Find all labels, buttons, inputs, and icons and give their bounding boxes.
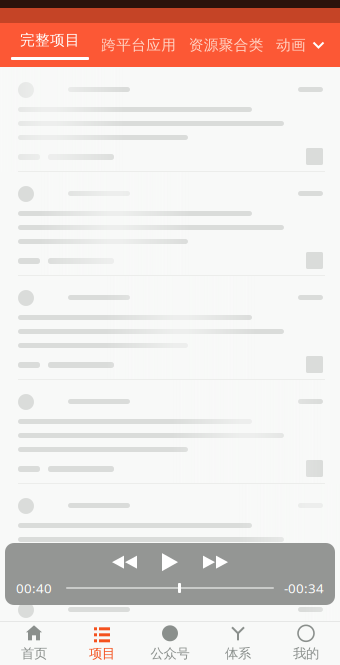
- button[interactable]: More categories: [306, 23, 331, 67]
- button[interactable]: Fast forward: [203, 556, 228, 569]
- button[interactable]: Play: [161, 553, 179, 571]
- staticText: 资源聚合类: [189, 36, 264, 54]
- staticText: 体系: [225, 645, 251, 662]
- staticText: -00:34: [284, 579, 324, 597]
- staticText: 项目: [89, 645, 115, 662]
- button[interactable]: 跨平台应用: [101, 23, 176, 67]
- button[interactable]: 体系: [204, 621, 272, 665]
- button[interactable]: 动画: [276, 23, 306, 67]
- staticText: 动画: [276, 36, 306, 54]
- staticText: 跨平台应用: [101, 36, 176, 54]
- button[interactable]: 资源聚合类: [189, 23, 264, 67]
- button[interactable]: 项目: [68, 621, 136, 665]
- button[interactable]: 首页: [0, 621, 68, 665]
- staticText: 首页: [21, 645, 47, 662]
- staticText: 00:40: [16, 579, 52, 597]
- button[interactable]: 我的: [272, 621, 340, 665]
- staticText: 我的: [293, 645, 319, 662]
- staticText: 公众号: [150, 645, 189, 662]
- staticText: 完整项目: [20, 31, 80, 49]
- button[interactable]: 公众号: [136, 621, 204, 665]
- button[interactable]: 完整项目: [11, 23, 89, 67]
- button[interactable]: Rewind: [112, 556, 137, 569]
